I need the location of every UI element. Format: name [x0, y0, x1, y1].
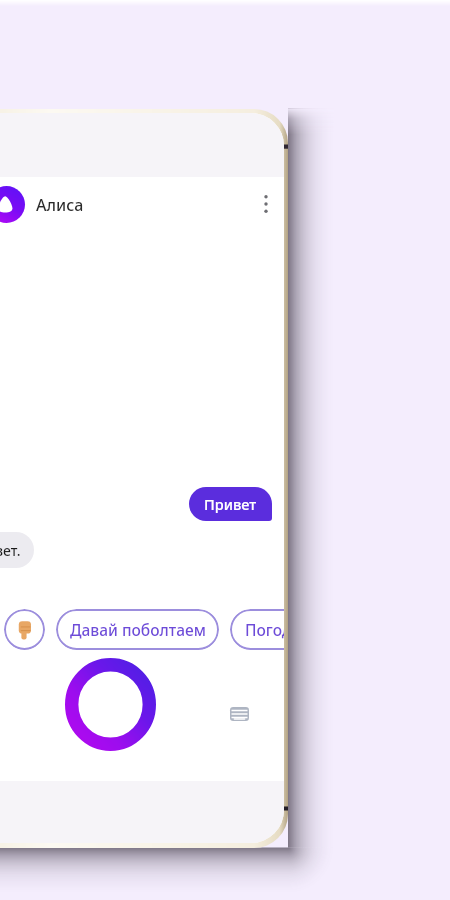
button[interactable]: Привет. — [0, 532, 34, 568]
button[interactable]: Алиса — [0, 186, 84, 223]
button[interactable]: Привет — [189, 487, 272, 521]
button[interactable]: Voice input — [65, 658, 156, 751]
button[interactable]: Dislike — [4, 609, 45, 650]
staticText: Давай поболтаем — [70, 619, 206, 640]
staticText: Привет — [204, 494, 257, 514]
button[interactable]: Погода — [230, 609, 284, 650]
button[interactable]: More options — [247, 185, 284, 223]
staticText: Погода — [245, 619, 284, 640]
button[interactable]: Давай поболтаем — [56, 609, 219, 650]
button[interactable]: Keyboard — [223, 698, 255, 730]
staticText: Алиса — [36, 194, 84, 216]
staticText: Привет. — [0, 541, 21, 560]
